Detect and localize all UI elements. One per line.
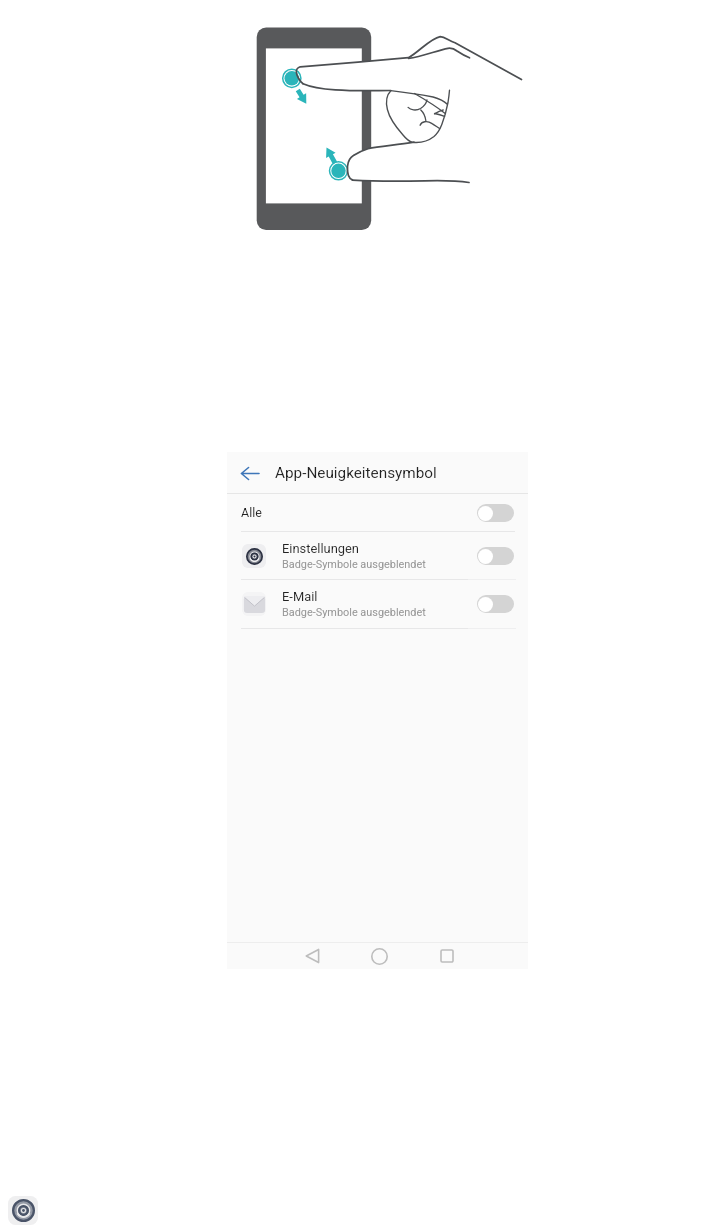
staticText: Einstellungen (282, 541, 359, 556)
button[interactable]: Toggle all badges (477, 504, 514, 522)
staticText: Badge-Symbole ausgeblendet (282, 606, 426, 619)
button[interactable]: Alle (227, 494, 528, 531)
staticText: Alle (241, 505, 262, 520)
staticText: App-Neuigkeitensymbol (275, 464, 437, 482)
staticText: Badge-Symbole ausgeblendet (282, 558, 426, 571)
button[interactable]: Recents (433, 943, 461, 969)
button[interactable]: Navigate back (298, 943, 326, 969)
button[interactable]: Settings (8, 1196, 38, 1225)
button[interactable]: Home (365, 943, 393, 969)
button[interactable]: Einstellungen (227, 532, 528, 579)
button[interactable]: E-Mail (227, 580, 528, 627)
button[interactable]: Toggle badges for E-Mail (477, 595, 514, 613)
button[interactable]: Toggle badges for Einstellungen (477, 547, 514, 565)
button[interactable]: Back (237, 457, 262, 489)
staticText: E-Mail (282, 589, 318, 604)
